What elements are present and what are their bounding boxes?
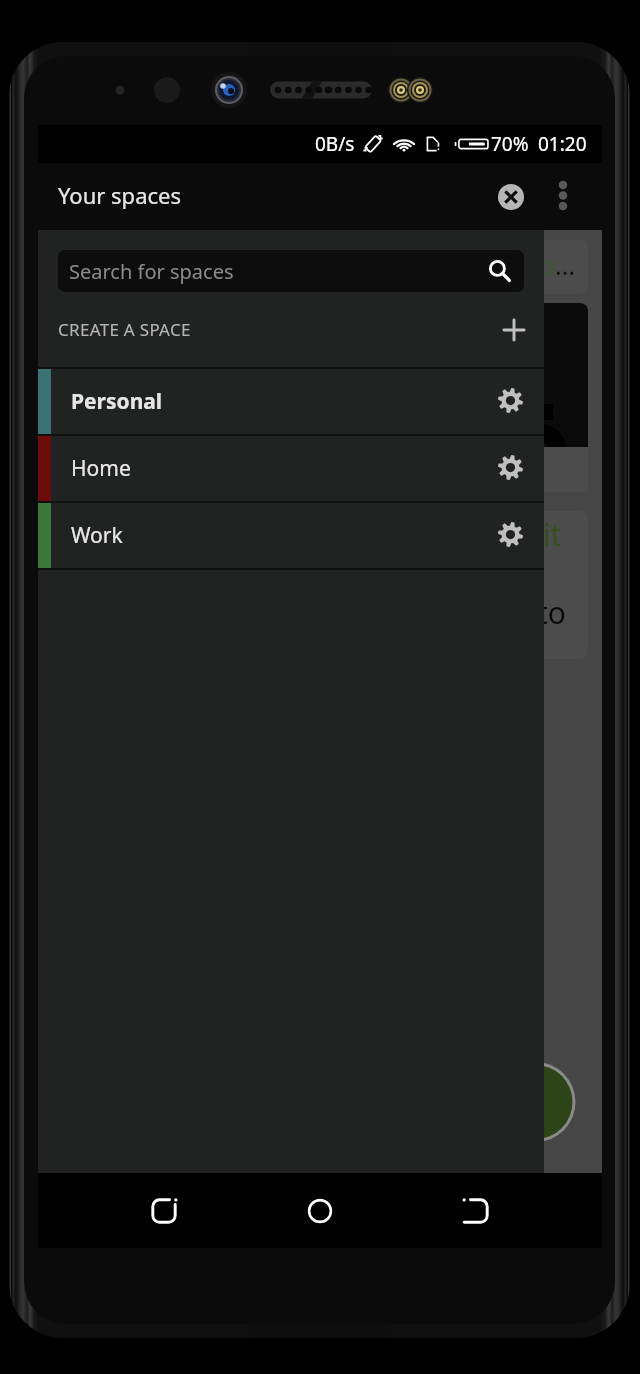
staticText: Search for spaces [69,258,234,285]
button[interactable]: Close [485,171,537,223]
button[interactable]: Home [38,436,544,501]
button[interactable]: Recent apps [114,1173,214,1248]
button[interactable]: Search for spaces [58,250,524,292]
button[interactable]: Work [38,503,544,568]
staticText: ... [555,248,576,282]
button[interactable]: Personal [38,369,544,434]
staticText: 01:20 [538,131,587,157]
staticText: Work [71,521,484,550]
button[interactable]: More options [537,171,589,223]
staticText: Home [71,454,484,483]
button[interactable]: Space settings [484,441,536,493]
staticText: 70% [491,131,529,157]
staticText: Your spaces [58,180,181,210]
button[interactable]: CREATE A SPACE [38,292,544,367]
staticText: o [539,248,555,282]
staticText: Personal [71,387,484,416]
button[interactable]: Home [270,1173,370,1248]
button[interactable]: Space settings [484,508,536,560]
staticText: it [543,514,562,555]
staticText: to [537,592,566,633]
button[interactable]: Space settings [484,374,536,426]
button[interactable]: Back [426,1173,526,1248]
staticText: 0B/s [315,131,355,157]
staticText: CREATE A SPACE [58,318,191,341]
